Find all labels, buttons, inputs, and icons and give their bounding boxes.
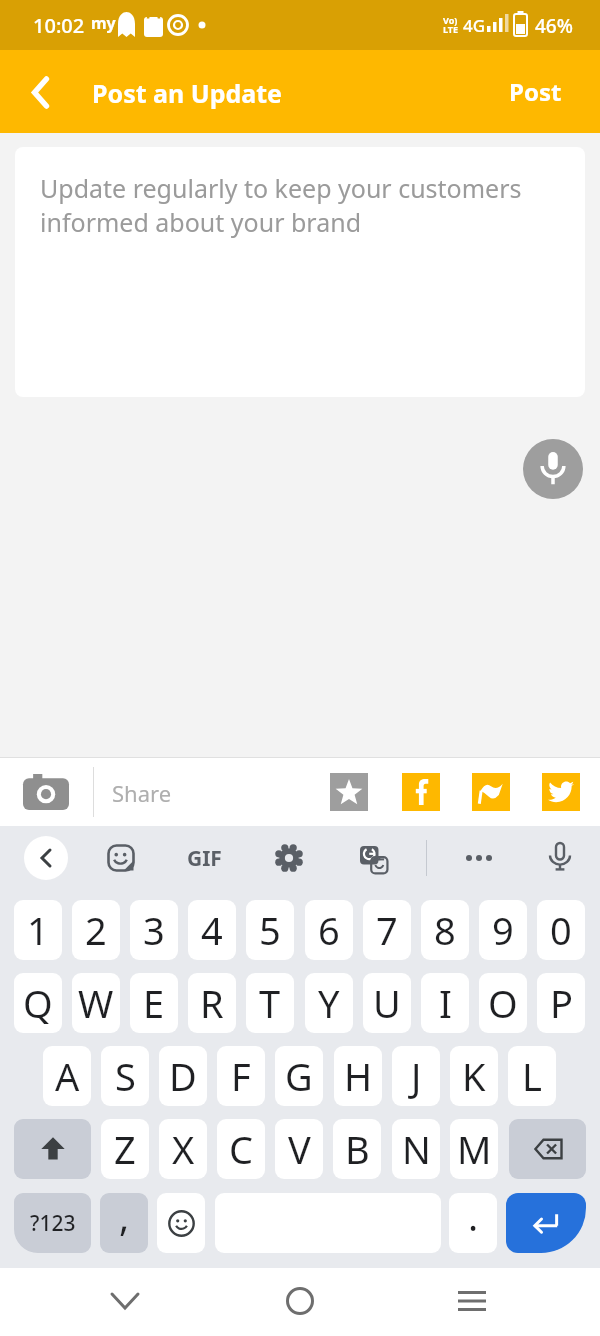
staticText: Z	[114, 1123, 136, 1175]
staticText: Q	[23, 977, 53, 1029]
button[interactable]	[447, 1276, 497, 1326]
button[interactable]: V	[275, 1119, 323, 1179]
staticText: 46%	[535, 13, 573, 39]
staticText: 9	[492, 904, 514, 956]
button[interactable]	[330, 773, 368, 811]
button[interactable]: J	[392, 1046, 440, 1106]
staticText: Y	[318, 977, 340, 1029]
staticText: I	[439, 977, 452, 1029]
button[interactable]: 2	[72, 900, 120, 960]
button[interactable]: L	[508, 1046, 556, 1106]
staticText: B	[345, 1123, 370, 1175]
staticText: G	[285, 1050, 313, 1102]
button[interactable]	[543, 841, 577, 875]
button[interactable]: 7	[363, 900, 411, 960]
button[interactable]: T	[246, 973, 294, 1033]
staticText: 4G	[463, 14, 486, 37]
button[interactable]: I	[421, 973, 469, 1033]
button[interactable]	[542, 773, 580, 811]
staticText: J	[411, 1050, 422, 1102]
staticText: D	[169, 1050, 197, 1102]
staticText: 5	[259, 904, 281, 956]
staticText: .	[468, 1193, 479, 1242]
staticText: F	[231, 1050, 251, 1102]
staticText: Post an Update	[92, 76, 283, 110]
button[interactable]: 5	[246, 900, 294, 960]
staticText: 8	[434, 904, 456, 956]
staticText: 2	[85, 904, 107, 956]
button[interactable]: Update regularly to keep your customers …	[15, 147, 585, 397]
button[interactable]: A	[43, 1046, 91, 1106]
staticText: 10:02	[33, 12, 85, 39]
button[interactable]: U	[363, 973, 411, 1033]
button[interactable]: 3	[130, 900, 178, 960]
staticText: Share	[112, 778, 172, 808]
button[interactable]	[20, 72, 60, 112]
button[interactable]	[509, 1119, 586, 1179]
staticText: W	[78, 977, 114, 1029]
button[interactable]	[272, 841, 306, 875]
button[interactable]: Post	[509, 75, 562, 108]
button[interactable]: P	[537, 973, 585, 1033]
button[interactable]: C	[217, 1119, 265, 1179]
button[interactable]: 6	[305, 900, 353, 960]
button[interactable]: 9	[479, 900, 527, 960]
button[interactable]: R	[188, 973, 236, 1033]
button[interactable]	[14, 1119, 91, 1179]
staticText: M	[457, 1123, 492, 1175]
button[interactable]: Y	[305, 973, 353, 1033]
button[interactable]: W	[72, 973, 120, 1033]
button[interactable]: K	[450, 1046, 498, 1106]
button[interactable]: X	[159, 1119, 207, 1179]
button[interactable]	[100, 1276, 150, 1326]
staticText: Vo)	[443, 14, 458, 26]
button[interactable]: S	[101, 1046, 149, 1106]
button[interactable]: O	[479, 973, 527, 1033]
button[interactable]	[24, 836, 68, 880]
button[interactable]: .	[449, 1193, 497, 1253]
button[interactable]: ,	[100, 1193, 148, 1253]
staticText: X	[172, 1123, 195, 1175]
staticText: R	[200, 977, 224, 1029]
staticText: S	[115, 1050, 136, 1102]
button[interactable]: E	[130, 973, 178, 1033]
button[interactable]: M	[450, 1119, 498, 1179]
button[interactable]	[357, 841, 391, 875]
button[interactable]: F	[217, 1046, 265, 1106]
staticText: LTE	[443, 23, 459, 35]
staticText: GIF	[187, 844, 222, 873]
button[interactable]	[462, 841, 496, 875]
button[interactable]	[506, 1193, 586, 1253]
staticText: L	[522, 1050, 542, 1102]
button[interactable]: B	[333, 1119, 381, 1179]
staticText: 4	[201, 904, 223, 956]
button[interactable]: ?123	[14, 1193, 91, 1253]
button[interactable]	[275, 1276, 325, 1326]
button[interactable]: 4	[188, 900, 236, 960]
staticText: V	[288, 1123, 311, 1175]
button[interactable]: N	[392, 1119, 440, 1179]
button[interactable]: 0	[537, 900, 585, 960]
button[interactable]: G	[275, 1046, 323, 1106]
button[interactable]	[157, 1193, 205, 1253]
button[interactable]: H	[334, 1046, 382, 1106]
button[interactable]: Z	[101, 1119, 149, 1179]
staticText: E	[143, 977, 165, 1029]
button[interactable]: Q	[14, 973, 62, 1033]
staticText: C	[229, 1123, 254, 1175]
button[interactable]: GIF	[180, 841, 228, 875]
button[interactable]	[472, 773, 510, 811]
button[interactable]	[402, 773, 440, 811]
staticText: 6	[318, 904, 340, 956]
staticText: U	[373, 977, 401, 1029]
button[interactable]: 1	[14, 900, 62, 960]
staticText: T	[259, 977, 281, 1029]
staticText: P	[550, 977, 573, 1029]
staticText: ?123	[30, 1209, 76, 1238]
button[interactable]	[22, 768, 70, 816]
button[interactable]: D	[159, 1046, 207, 1106]
button[interactable]: 8	[421, 900, 469, 960]
button[interactable]	[104, 841, 138, 875]
button[interactable]	[523, 439, 583, 499]
